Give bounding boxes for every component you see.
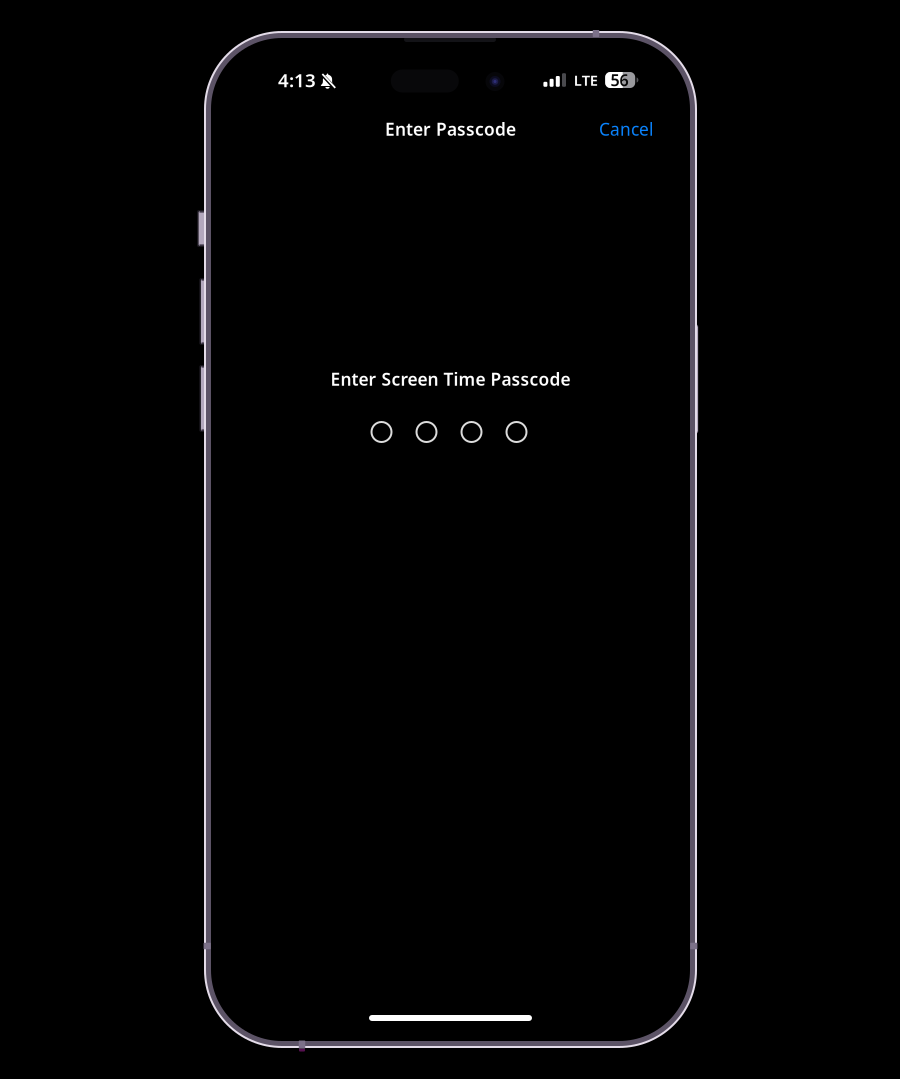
- button[interactable]: Cancel: [589, 108, 663, 149]
- button[interactable]: Passcode: [211, 422, 690, 442]
- staticText: 56: [610, 69, 628, 91]
- staticText: Enter Screen Time Passcode: [330, 367, 570, 390]
- staticText: 4:13: [278, 68, 316, 92]
- staticText: Cancel: [599, 117, 653, 140]
- staticText: Enter Passcode: [385, 117, 516, 140]
- staticText: LTE: [574, 70, 598, 90]
